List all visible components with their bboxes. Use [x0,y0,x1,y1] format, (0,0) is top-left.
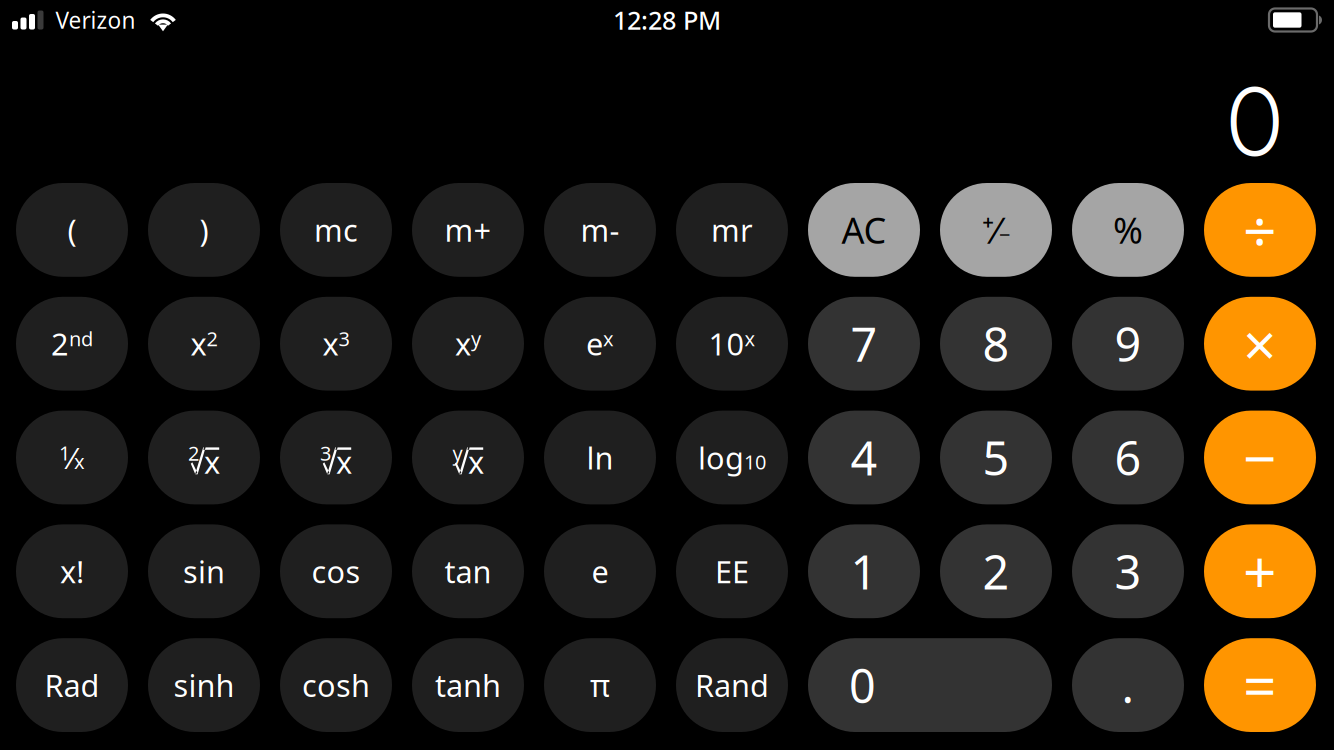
button[interactable]: AC [808,183,920,277]
staticText: = [1243,646,1277,724]
staticText: mc [314,209,358,250]
staticText: ) [199,209,208,250]
button[interactable]: − [1204,411,1316,504]
button[interactable]: m- [544,183,656,277]
staticText: % [1113,206,1143,254]
staticText: m+ [444,209,491,250]
button[interactable]: 5 [940,411,1052,504]
button[interactable]: Rad [16,638,128,732]
button[interactable]: sinh [148,638,260,732]
staticText: 2nd [51,323,93,364]
staticText: . [1121,654,1134,716]
button[interactable]: Rand [676,638,788,732]
button[interactable]: 4 [808,411,920,504]
button[interactable]: 2nd [16,297,128,391]
button[interactable]: ⁺⁄− [940,183,1052,277]
staticText: 9 [1114,313,1141,375]
staticText: tanh [435,665,501,705]
staticText: 3 [320,440,331,466]
staticText: x3 [322,323,349,364]
staticText: xy [455,323,481,364]
staticText: EE [715,551,749,592]
staticText: ÷ [1243,191,1277,269]
staticText: x [468,441,484,482]
staticText: 2 [982,540,1009,602]
staticText: x2 [190,323,217,364]
button[interactable]: 2 [940,524,1052,618]
button[interactable]: 10x [676,297,788,391]
staticText: AC [841,206,886,254]
button[interactable]: cosh [280,638,392,732]
button[interactable]: π [544,638,656,732]
staticText: x [336,441,352,482]
button[interactable]: xy [412,297,524,391]
staticText: cosh [302,665,370,705]
staticText: 0 [1227,65,1282,178]
button[interactable]: × [1204,297,1316,391]
staticText: ⁺⁄− [982,206,1010,254]
button[interactable]: ln [544,411,656,504]
staticText: 5 [982,426,1009,488]
button[interactable]: mr [676,183,788,277]
button[interactable]: 0 [808,638,1052,732]
button[interactable]: ( [16,183,128,277]
staticText: 12:28 PM [613,3,721,37]
staticText: × [1243,305,1277,383]
button[interactable]: % [1072,183,1184,277]
button[interactable]: mc [280,183,392,277]
staticText: 1 [850,540,877,602]
staticText: tan [444,551,491,592]
staticText: x! [60,551,84,592]
button[interactable]: 2 [148,411,260,504]
staticText: 3 [1114,540,1141,602]
staticText: sin [183,551,225,592]
button[interactable]: sin [148,524,260,618]
button[interactable]: x2 [148,297,260,391]
button[interactable]: tan [412,524,524,618]
button[interactable]: log10 [676,411,788,504]
button[interactable]: x3 [280,297,392,391]
staticText: ln [586,437,613,478]
staticText: ex [586,323,614,364]
button[interactable]: y [412,411,524,504]
staticText: 8 [982,313,1009,375]
staticText: − [1243,418,1277,496]
button[interactable]: + [1204,524,1316,618]
button[interactable]: 7 [808,297,920,391]
button[interactable]: EE [676,524,788,618]
staticText: Verizon [55,5,135,35]
staticText: log10 [698,437,766,478]
button[interactable]: 3 [280,411,392,504]
button[interactable]: 6 [1072,411,1184,504]
button[interactable]: ) [148,183,260,277]
button[interactable]: e [544,524,656,618]
staticText: ( [67,209,76,250]
button[interactable]: x! [16,524,128,618]
staticText: m- [580,209,619,250]
button[interactable]: 3 [1072,524,1184,618]
staticText: + [1243,532,1277,610]
button[interactable]: cos [280,524,392,618]
staticText: Rad [44,665,99,705]
staticText: y [452,440,462,466]
button[interactable]: ÷ [1204,183,1316,277]
button[interactable]: 1⁄x [16,411,128,504]
staticText: sinh [173,665,234,705]
staticText: 0 [849,654,876,716]
button[interactable]: 1 [808,524,920,618]
button[interactable]: . [1072,638,1184,732]
staticText: e [591,551,608,592]
button[interactable]: = [1204,638,1316,732]
staticText: 7 [850,313,877,375]
staticText: 2 [188,440,199,466]
button[interactable]: ex [544,297,656,391]
staticText: Rand [695,665,769,705]
button[interactable]: tanh [412,638,524,732]
staticText: 10x [708,323,755,364]
button[interactable]: 9 [1072,297,1184,391]
button[interactable]: m+ [412,183,524,277]
staticText: 6 [1114,426,1141,488]
staticText: cos [311,551,360,592]
staticText: 4 [850,426,877,488]
button[interactable]: 8 [940,297,1052,391]
